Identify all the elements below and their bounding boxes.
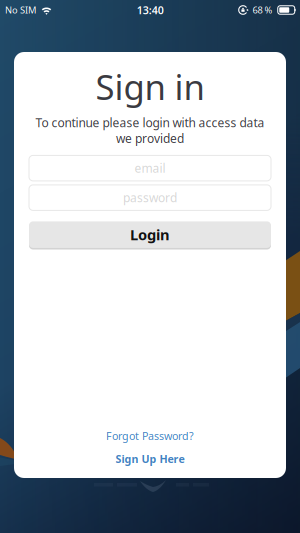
button[interactable]: Forgot Password?: [106, 429, 194, 443]
staticText: Sign Up Here: [115, 452, 184, 466]
button[interactable]: Sign Up Here: [115, 452, 184, 466]
staticText: password: [123, 190, 177, 206]
staticText: Login: [130, 225, 170, 244]
staticText: email: [134, 160, 165, 176]
staticText: No SIM: [5, 4, 36, 16]
staticText: 13:40: [137, 3, 164, 17]
staticText: To continue please login with access dat…: [35, 114, 264, 130]
staticText: Sign in: [95, 63, 204, 109]
button[interactable]: Login: [29, 221, 271, 249]
button[interactable]: password: [29, 185, 271, 210]
staticText: Forgot Password?: [106, 429, 194, 443]
button[interactable]: email: [29, 155, 271, 181]
staticText: we provided: [116, 130, 184, 146]
staticText: 68 %: [252, 4, 272, 16]
